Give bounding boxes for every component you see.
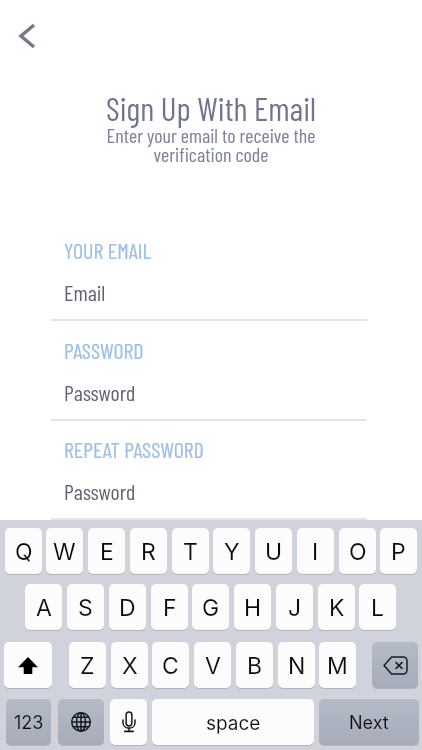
staticText: H (244, 594, 262, 622)
staticText: Password (64, 379, 136, 405)
staticText: E (100, 538, 114, 566)
staticText: M (327, 652, 348, 680)
button[interactable]: YOUR EMAIL (51, 236, 367, 326)
button[interactable]: Shift (4, 642, 52, 688)
staticText: U (265, 538, 283, 566)
button[interactable]: Y (213, 528, 250, 574)
staticText: W (53, 538, 76, 566)
button[interactable]: P (380, 528, 417, 574)
button[interactable]: space (152, 699, 314, 745)
button[interactable]: D (109, 584, 146, 630)
staticText: D (119, 594, 136, 622)
button[interactable]: Q (5, 528, 42, 574)
staticText: V (205, 652, 221, 680)
button[interactable]: G (192, 584, 229, 630)
staticText: 123 (14, 712, 44, 734)
staticText: X (122, 652, 138, 680)
staticText: O (349, 538, 367, 566)
button[interactable]: J (276, 584, 313, 630)
staticText: R (141, 538, 156, 566)
button[interactable]: REPEAT PASSWORD (51, 435, 367, 525)
button[interactable]: F (151, 584, 188, 630)
staticText: K (329, 594, 345, 622)
staticText: J (288, 594, 302, 622)
staticText: Password (64, 478, 136, 504)
button[interactable]: V (194, 642, 231, 688)
button[interactable]: M (319, 642, 356, 688)
staticText: REPEAT PASSWORD (64, 436, 204, 462)
button[interactable]: U (255, 528, 292, 574)
button[interactable]: R (130, 528, 167, 574)
button[interactable]: O (339, 528, 376, 574)
staticText: A (36, 594, 52, 622)
staticText: P (391, 538, 406, 566)
button[interactable]: I (297, 528, 334, 574)
staticText: F (163, 594, 177, 622)
staticText: Y (224, 538, 240, 566)
button[interactable]: A (25, 584, 62, 630)
staticText: YOUR EMAIL (64, 237, 152, 263)
staticText: Next (349, 712, 389, 734)
staticText: space (206, 712, 261, 735)
staticText: PASSWORD (64, 337, 144, 363)
staticText: G (202, 594, 220, 622)
staticText: I (312, 538, 319, 566)
staticText: Enter your email to receive the verifica… (1, 123, 421, 166)
button[interactable]: Next (319, 699, 419, 745)
button[interactable]: W (46, 528, 83, 574)
button[interactable]: Dictate (110, 699, 147, 745)
staticText: Email (64, 279, 106, 305)
staticText: Z (80, 652, 95, 680)
button[interactable]: C (152, 642, 189, 688)
button[interactable]: X (111, 642, 148, 688)
staticText: B (247, 652, 263, 680)
button[interactable]: PASSWORD (51, 336, 367, 426)
button[interactable]: 123 (6, 699, 51, 745)
staticText: N (288, 652, 306, 680)
button[interactable]: Change keyboard (58, 699, 104, 745)
staticText: S (78, 594, 93, 622)
staticText: C (162, 652, 179, 680)
button[interactable]: B (236, 642, 273, 688)
button[interactable]: K (318, 584, 355, 630)
button[interactable]: Backspace (372, 642, 418, 688)
button[interactable]: E (88, 528, 125, 574)
button[interactable]: T (172, 528, 209, 574)
button[interactable]: N (278, 642, 315, 688)
staticText: Sign Up With Email (1, 88, 421, 128)
staticText: L (371, 594, 385, 622)
button[interactable]: L (359, 584, 396, 630)
button[interactable]: Back (6, 15, 48, 57)
button[interactable]: S (67, 584, 104, 630)
staticText: Q (15, 538, 33, 566)
button[interactable]: H (234, 584, 271, 630)
staticText: T (183, 538, 198, 566)
button[interactable]: Z (69, 642, 106, 688)
